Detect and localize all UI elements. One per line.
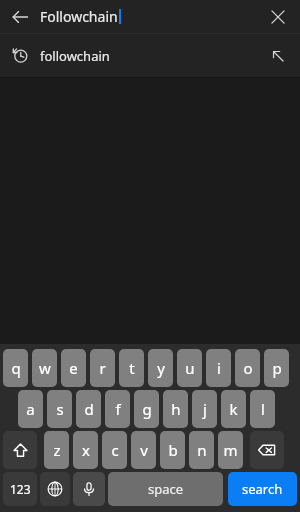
staticText: v: [140, 440, 148, 460]
staticText: u: [185, 358, 195, 378]
button[interactable]: m: [218, 431, 243, 469]
staticText: j: [203, 399, 207, 419]
button[interactable]: o: [235, 349, 260, 387]
button[interactable]: w: [32, 349, 57, 387]
button[interactable]: c: [102, 431, 127, 469]
button[interactable]: t: [119, 349, 144, 387]
staticText: i: [217, 358, 221, 378]
button[interactable]: p: [264, 349, 289, 387]
staticText: e: [69, 358, 78, 378]
staticText: p: [272, 358, 282, 378]
button[interactable]: Insert suggestion: [256, 34, 300, 77]
staticText: o: [243, 358, 253, 378]
staticText: g: [142, 399, 152, 419]
button[interactable]: e: [61, 349, 86, 387]
button[interactable]: k: [221, 390, 246, 428]
staticText: b: [168, 440, 178, 460]
staticText: z: [53, 440, 61, 460]
staticText: a: [26, 399, 35, 419]
button[interactable]: Back: [0, 0, 40, 33]
staticText: t: [129, 358, 135, 378]
button[interactable]: h: [163, 390, 188, 428]
staticText: x: [82, 440, 90, 460]
staticText: r: [99, 358, 106, 378]
staticText: w: [39, 358, 51, 378]
staticText: k: [229, 399, 238, 419]
staticText: d: [84, 399, 94, 419]
button[interactable]: u: [177, 349, 202, 387]
button[interactable]: 123: [3, 472, 37, 506]
button[interactable]: z: [44, 431, 69, 469]
button[interactable]: Backspace: [250, 431, 284, 469]
button[interactable]: y: [148, 349, 173, 387]
staticText: f: [115, 399, 121, 419]
button[interactable]: search: [228, 472, 297, 506]
button[interactable]: space: [108, 472, 223, 506]
button[interactable]: v: [131, 431, 156, 469]
button[interactable]: Voice input: [73, 472, 105, 506]
button[interactable]: x: [73, 431, 98, 469]
button[interactable]: a: [18, 390, 43, 428]
staticText: s: [56, 399, 64, 419]
staticText: c: [111, 440, 119, 460]
button[interactable]: j: [192, 390, 217, 428]
button[interactable]: r: [90, 349, 115, 387]
button[interactable]: d: [76, 390, 101, 428]
button[interactable]: i: [206, 349, 231, 387]
button[interactable]: Shift: [3, 431, 37, 469]
staticText: n: [197, 440, 207, 460]
button[interactable]: Change language: [40, 472, 70, 506]
button[interactable]: followchain: [0, 34, 300, 77]
staticText: l: [261, 399, 265, 419]
staticText: space: [148, 480, 184, 498]
button[interactable]: b: [160, 431, 185, 469]
button[interactable]: l: [250, 390, 275, 428]
staticText: m: [223, 440, 238, 460]
staticText: followchain: [40, 47, 110, 65]
button[interactable]: g: [134, 390, 159, 428]
button[interactable]: q: [3, 349, 28, 387]
staticText: 123: [10, 481, 31, 497]
staticText: Followchain: [40, 7, 118, 26]
button[interactable]: s: [47, 390, 72, 428]
staticText: q: [11, 358, 21, 378]
staticText: h: [171, 399, 181, 419]
button[interactable]: n: [189, 431, 214, 469]
staticText: y: [157, 358, 165, 378]
staticText: search: [242, 480, 283, 498]
button[interactable]: f: [105, 390, 130, 428]
button[interactable]: Clear: [256, 0, 300, 33]
